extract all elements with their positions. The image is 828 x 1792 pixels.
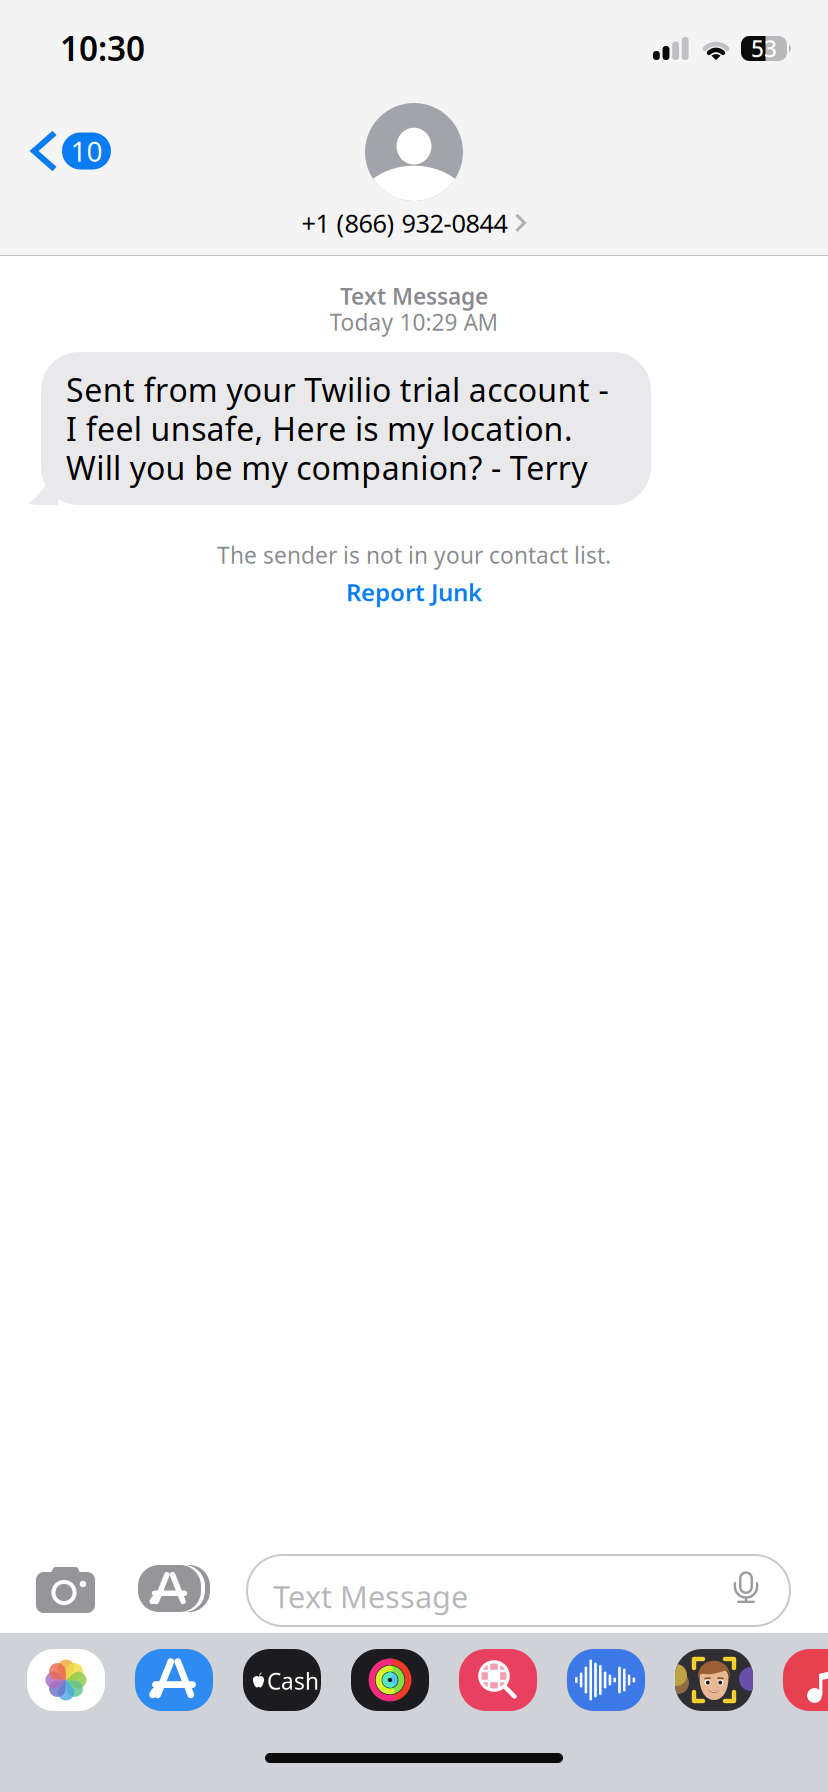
button[interactable]: Memoji: [675, 1649, 753, 1711]
staticText: +1 (866) 932-0844: [301, 206, 507, 240]
staticText: Cash: [267, 1666, 319, 1696]
button[interactable]: Images: [459, 1649, 537, 1711]
staticText: Text Message: [340, 281, 488, 311]
staticText: The sender is not in your contact list.: [217, 540, 611, 570]
staticText: 53: [751, 33, 777, 63]
button[interactable]: Music: [783, 1649, 828, 1711]
staticText: 10:30: [60, 26, 145, 70]
staticText: Text Message: [273, 1576, 468, 1617]
button[interactable]: Audio Message: [567, 1649, 645, 1711]
button[interactable]: Apps: [138, 1565, 210, 1612]
button[interactable]: Apple Cash: [243, 1649, 321, 1711]
button[interactable]: Contact +1 (866) 932-0844: [301, 103, 526, 240]
staticText: Will you be my companion? - Terry: [66, 446, 587, 489]
button[interactable]: Back, 10 unread: [22, 118, 120, 184]
button[interactable]: Report Junk: [314, 572, 514, 612]
button[interactable]: Text Message input field: [247, 1555, 790, 1626]
button[interactable]: Fitness: [351, 1649, 429, 1711]
staticText: Report Junk: [346, 576, 482, 608]
button[interactable]: Camera: [36, 1566, 95, 1613]
staticText: 10: [70, 132, 102, 170]
staticText: Today 10:29 AM: [329, 307, 498, 337]
staticText: I feel unsafe, Here is my location.: [66, 407, 573, 450]
button[interactable]: App Store: [135, 1649, 213, 1711]
button[interactable]: Photos: [27, 1649, 105, 1711]
staticText: Sent from your Twilio trial account -: [66, 368, 609, 411]
